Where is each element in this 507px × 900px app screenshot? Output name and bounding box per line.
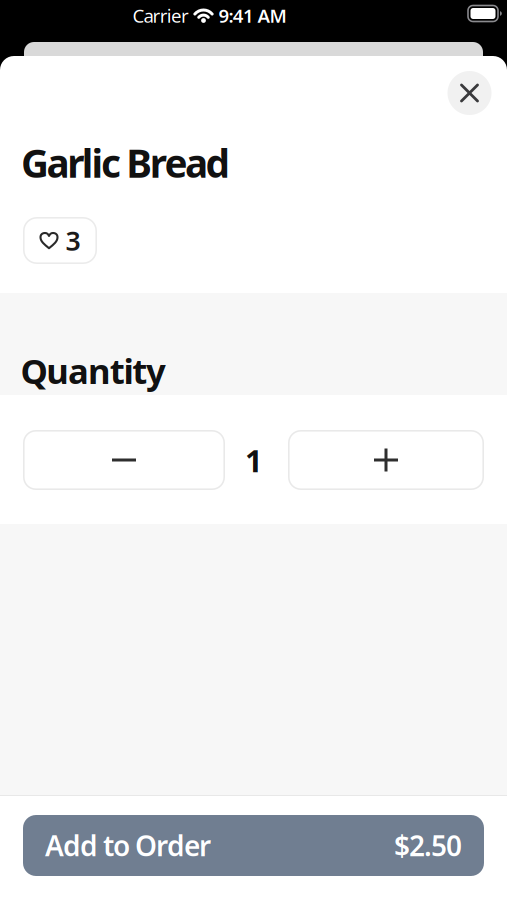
button[interactable]: 3 likes <box>23 217 97 264</box>
staticText: Quantity <box>20 347 166 393</box>
button[interactable]: Increase quantity <box>288 430 484 490</box>
staticText: Add to Order <box>45 827 211 864</box>
staticText: Garlic Bread <box>21 137 230 188</box>
staticText: Carrier <box>132 3 189 28</box>
staticText: 9:41 AM <box>218 3 287 28</box>
button[interactable]: Decrease quantity <box>23 430 225 490</box>
staticText: 1 <box>245 440 263 481</box>
button[interactable]: Close <box>447 71 491 115</box>
staticText: 3 <box>65 223 80 258</box>
staticText: $2.50 <box>394 827 462 864</box>
button[interactable]: Add to Order <box>23 815 484 876</box>
